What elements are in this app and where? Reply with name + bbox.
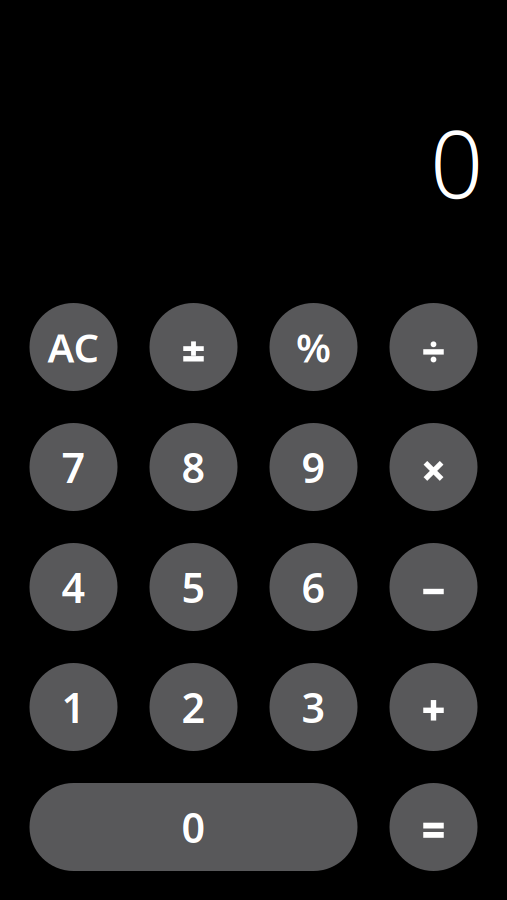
button[interactable]: Plus minus <box>149 303 237 391</box>
button[interactable]: 9 <box>269 423 357 511</box>
staticText: 8 <box>181 440 205 494</box>
button[interactable]: 1 <box>29 663 117 751</box>
button[interactable]: 6 <box>269 543 357 631</box>
button[interactable]: Minus <box>389 543 477 631</box>
staticText: 4 <box>61 560 85 614</box>
button[interactable]: 2 <box>149 663 237 751</box>
staticText: AC <box>47 320 99 373</box>
button[interactable]: 7 <box>29 423 117 511</box>
button[interactable]: AC <box>29 303 117 391</box>
button[interactable]: 8 <box>149 423 237 511</box>
staticText: 0 <box>181 800 205 854</box>
staticText: 6 <box>301 560 325 614</box>
button[interactable]: 0 <box>29 783 357 871</box>
staticText: 7 <box>61 440 85 494</box>
button[interactable]: % <box>269 303 357 391</box>
staticText: 5 <box>181 560 205 614</box>
button[interactable]: 4 <box>29 543 117 631</box>
staticText: 3 <box>301 680 325 734</box>
button[interactable]: Plus <box>389 663 477 751</box>
button[interactable]: Equals <box>389 783 477 871</box>
staticText: % <box>296 320 331 373</box>
staticText: 0 <box>430 100 483 224</box>
button[interactable]: 5 <box>149 543 237 631</box>
staticText: 2 <box>181 680 205 734</box>
button[interactable]: Divide <box>389 303 477 391</box>
button[interactable]: Multiply <box>389 423 477 511</box>
staticText: 9 <box>301 440 325 494</box>
staticText: 1 <box>61 680 85 734</box>
button[interactable]: 3 <box>269 663 357 751</box>
